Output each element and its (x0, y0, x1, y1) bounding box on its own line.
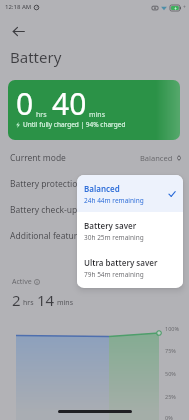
staticText: Battery saver (84, 220, 137, 231)
staticText: Additional features (10, 230, 86, 242)
staticText: 0% (165, 414, 173, 420)
button[interactable]: Ultra battery saver (77, 249, 183, 286)
staticText: 75% (165, 347, 176, 354)
staticText: mins (89, 110, 106, 120)
button[interactable]: Current mode (0, 147, 189, 169)
button[interactable]: Balanced (77, 175, 183, 212)
button[interactable]: Back (5, 18, 31, 44)
staticText: 30h 25m remaining (84, 233, 144, 242)
staticText: 100% (165, 325, 180, 332)
staticText: Until fully charged | 94% charged (23, 120, 126, 129)
staticText: 40 (52, 83, 87, 124)
button[interactable]: Battery protection (0, 173, 189, 195)
staticText: hrs (36, 110, 47, 120)
staticText: 50% (165, 370, 176, 377)
staticText: 2 (12, 290, 21, 310)
staticText: hrs (23, 298, 34, 308)
staticText: Ultra battery saver (84, 257, 158, 268)
staticText: Battery (10, 47, 62, 67)
staticText: Active (12, 277, 32, 287)
staticText: 12:18 AM (5, 3, 32, 11)
button[interactable]: Battery check-up (0, 199, 189, 221)
staticText: 0 (16, 83, 34, 124)
button[interactable]: Additional features (0, 225, 189, 247)
button[interactable]: 0 (8, 80, 180, 140)
staticText: Balanced (84, 183, 120, 194)
staticText: + (183, 4, 186, 11)
staticText: mins (57, 298, 74, 308)
staticText: Battery protection (10, 178, 83, 190)
staticText: Battery check-up (10, 204, 78, 216)
staticText: 25% (165, 393, 176, 400)
staticText: 14 (37, 290, 55, 310)
button[interactable]: Battery saver (77, 212, 183, 249)
staticText: 79h 54m remaining (84, 270, 144, 279)
staticText: 24h 44m remaining (84, 196, 144, 205)
staticText: Balanced (140, 153, 173, 163)
staticText: Current mode (10, 152, 66, 164)
